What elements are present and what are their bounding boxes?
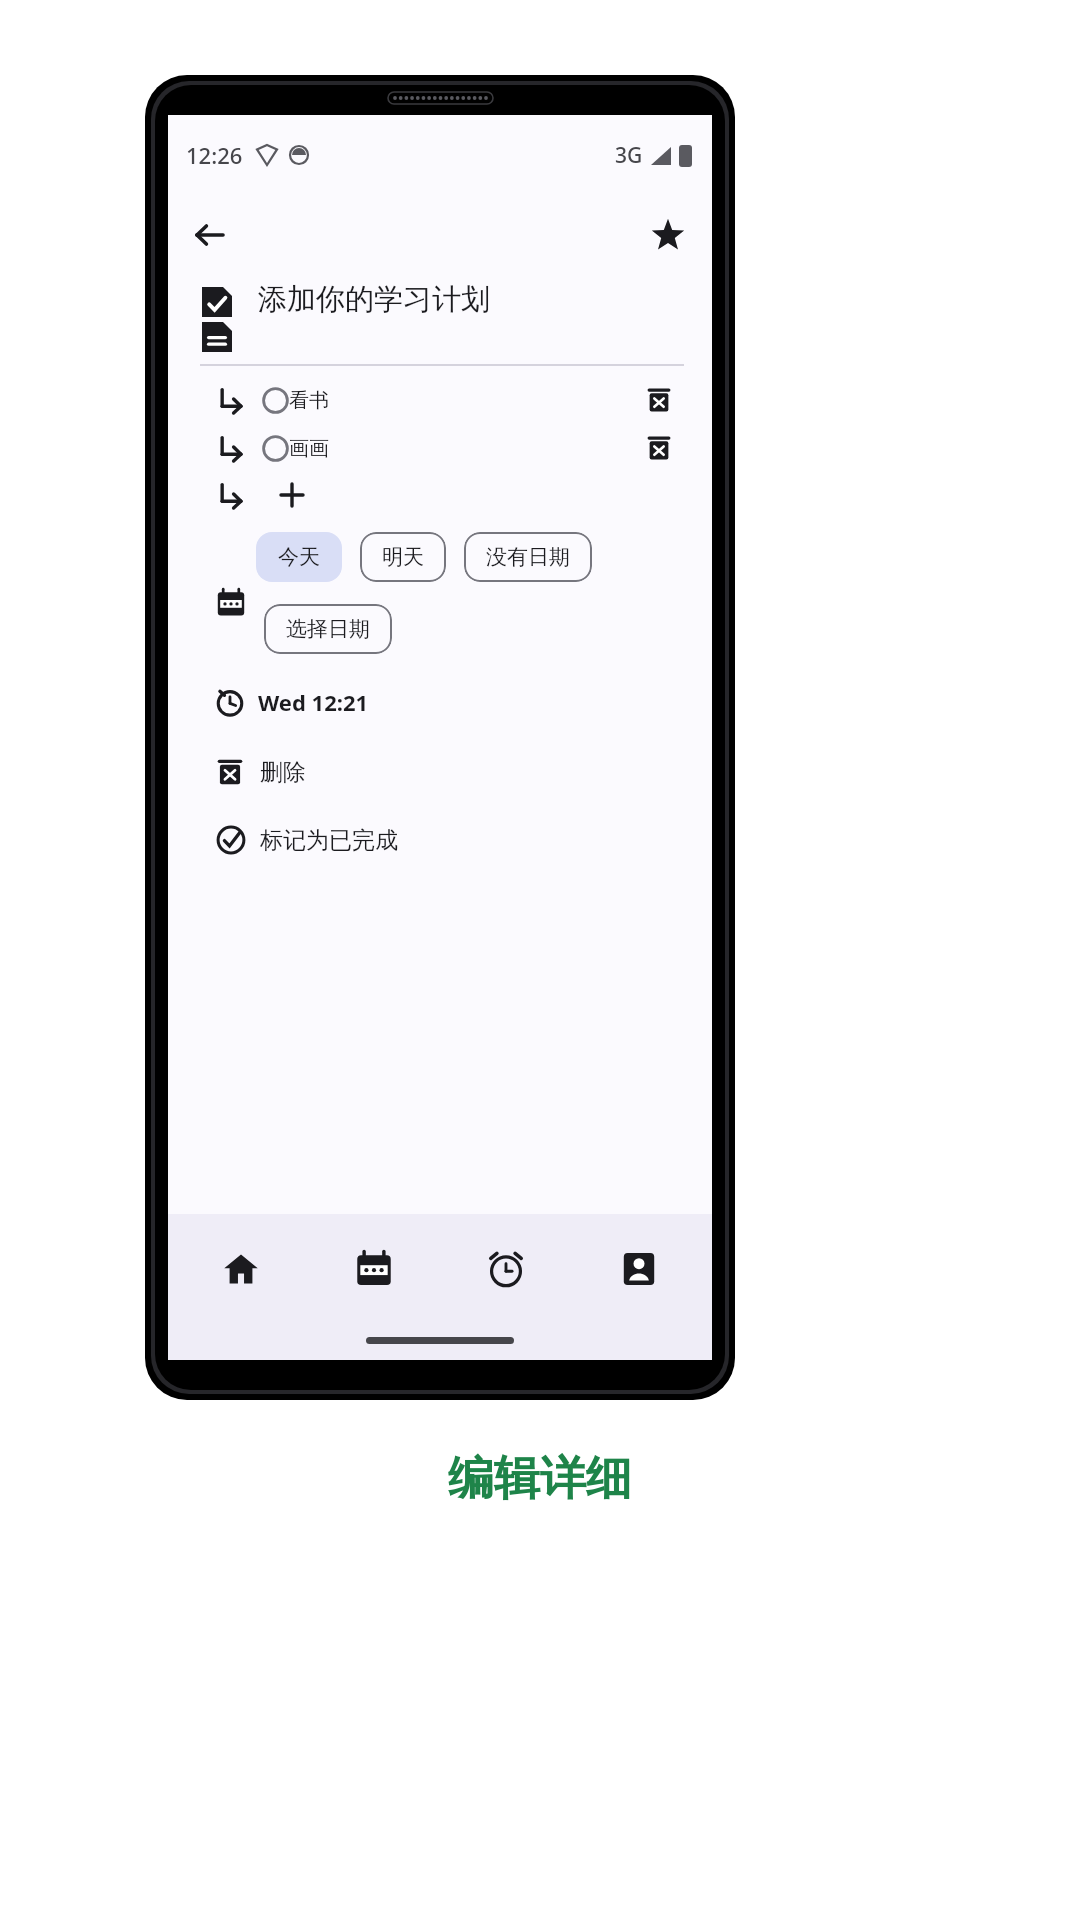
staticText: 标记为已完成 <box>260 826 398 855</box>
staticText: 看书 <box>289 388 329 413</box>
button[interactable]: 标记为已完成 <box>168 812 712 868</box>
staticText: 没有日期 <box>486 544 570 570</box>
staticText: 画画 <box>289 436 329 461</box>
staticText: 编辑详细 <box>448 1450 632 1508</box>
staticText: 3G <box>615 141 643 170</box>
button[interactable]: Favorite <box>640 207 696 263</box>
button[interactable]: Delete subtask <box>634 376 684 424</box>
staticText: 添加你的学习计划 <box>258 281 490 318</box>
button[interactable]: Wed 12:21 <box>168 674 712 730</box>
staticText: 12:26 <box>186 140 243 170</box>
button[interactable]: 画画 <box>168 424 712 472</box>
staticText: 删除 <box>260 758 306 787</box>
button[interactable]: 今天 <box>256 532 342 582</box>
other: Add subtask <box>272 475 312 515</box>
button[interactable]: Alarm <box>446 1223 566 1315</box>
staticText: Wed 12:21 <box>258 687 369 717</box>
button[interactable]: Back <box>182 207 238 263</box>
button[interactable]: Profile <box>579 1223 699 1315</box>
button[interactable]: Add subtask <box>168 472 712 518</box>
staticText: 明天 <box>382 544 424 570</box>
staticText: 今天 <box>278 544 320 570</box>
button[interactable]: 没有日期 <box>464 532 592 582</box>
button[interactable]: 明天 <box>360 532 446 582</box>
button[interactable]: Delete subtask <box>634 424 684 472</box>
button[interactable]: 删除 <box>168 744 712 800</box>
button[interactable]: Calendar <box>314 1223 434 1315</box>
staticText: 选择日期 <box>286 616 370 642</box>
button[interactable]: 看书 <box>168 376 712 424</box>
button[interactable]: Home <box>181 1223 301 1315</box>
button[interactable]: 选择日期 <box>264 604 392 654</box>
